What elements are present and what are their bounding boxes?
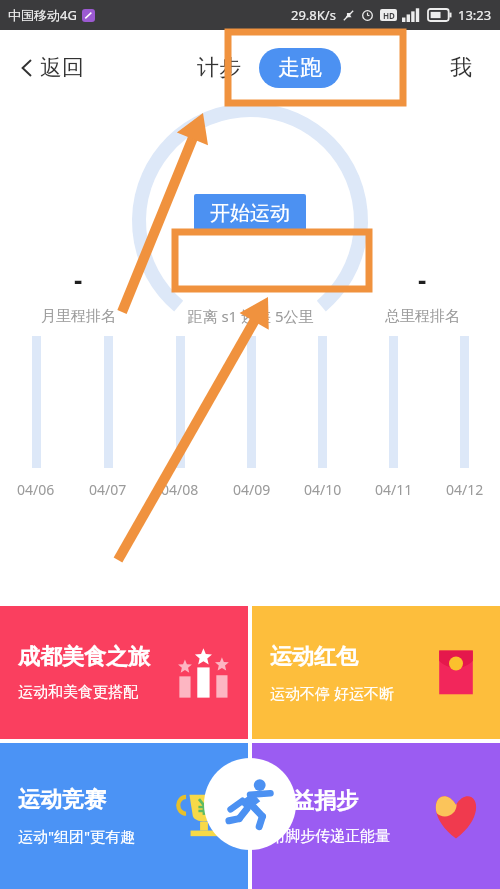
staticText: 计步 bbox=[197, 54, 241, 82]
staticText: 04/07 bbox=[89, 480, 127, 499]
staticText: 运动红包 bbox=[270, 643, 358, 671]
staticText: - bbox=[418, 262, 427, 297]
staticText: 运动竞赛 bbox=[18, 786, 106, 814]
staticText: 公益捐步 bbox=[270, 787, 358, 815]
staticText: 29.8K/s bbox=[291, 6, 336, 24]
staticText: 走跑 bbox=[278, 54, 322, 82]
staticText: 13:23 bbox=[458, 6, 492, 24]
staticText: 我 bbox=[450, 54, 472, 82]
button[interactable]: 运动红包 bbox=[252, 606, 500, 739]
staticText: 04/08 bbox=[161, 480, 199, 499]
staticText: 04/10 bbox=[304, 480, 342, 499]
staticText: 04/12 bbox=[446, 480, 484, 499]
staticText: 04/06 bbox=[17, 480, 55, 499]
staticText: 运动"组团"更有趣 bbox=[18, 826, 136, 846]
staticText: 运动不停 好运不断 bbox=[270, 683, 394, 703]
button[interactable]: 运动竞赛 bbox=[0, 743, 248, 889]
staticText: 用脚步传递正能量 bbox=[270, 827, 390, 846]
staticText: 返回 bbox=[40, 54, 84, 82]
button[interactable]: 计步 bbox=[191, 48, 247, 88]
staticText: 04/11 bbox=[375, 480, 413, 499]
button[interactable]: 返回 bbox=[12, 50, 88, 86]
staticText: 月里程排名 bbox=[41, 307, 116, 326]
staticText: 运动和美食更搭配 bbox=[18, 683, 138, 702]
button[interactable]: 我 bbox=[444, 48, 478, 88]
button[interactable]: 走跑 bbox=[259, 48, 341, 88]
staticText: - bbox=[74, 262, 83, 297]
button[interactable]: 公益捐步 bbox=[252, 743, 500, 889]
staticText: 成都美食之旅 bbox=[18, 643, 150, 671]
staticText: 04/09 bbox=[233, 480, 271, 499]
staticText: 总里程排名 bbox=[385, 307, 460, 326]
staticText: HD bbox=[383, 10, 395, 21]
staticText: 开始运动 bbox=[210, 201, 290, 226]
button[interactable]: 开始运动 bbox=[194, 194, 306, 233]
button[interactable]: 开始跑步 bbox=[204, 758, 296, 850]
staticText: 中国移动4G bbox=[8, 6, 77, 24]
staticText: 距离 s1 还差 5公里 bbox=[187, 306, 314, 326]
button[interactable]: 成都美食之旅 bbox=[0, 606, 248, 739]
